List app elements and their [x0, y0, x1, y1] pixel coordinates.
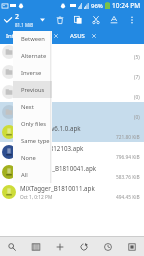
button[interactable]: 2	[15, 12, 37, 28]
staticText: Next	[21, 103, 34, 111]
button[interactable]: MiXTagger_B1810011.apk	[0, 182, 144, 202]
staticText: Inverse	[21, 69, 42, 77]
button[interactable]: Previous	[13, 81, 52, 98]
button[interactable]: View mode	[24, 237, 48, 256]
button[interactable]: Alternate	[13, 47, 52, 64]
staticText: 96%	[91, 2, 103, 10]
button[interactable]: Alarms	[0, 42, 144, 62]
button[interactable]: More options	[123, 11, 141, 28]
button[interactable]: Android	[0, 62, 144, 82]
staticText: Backups	[20, 104, 45, 112]
staticText: Android	[20, 64, 44, 72]
button[interactable]: Search	[0, 237, 24, 256]
staticText: Oct 1, 0:12 PM	[20, 74, 53, 81]
staticText: (7)	[134, 74, 140, 81]
button[interactable]: History	[96, 237, 120, 256]
staticText: MiXplorer_v6.1.0.apk	[20, 124, 81, 132]
button[interactable]: MiXLib_B1812103.apk	[0, 142, 144, 162]
button[interactable]: Refresh	[72, 237, 96, 256]
staticText: Same type	[21, 137, 50, 145]
staticText: 10:24 PM	[112, 1, 141, 10]
button[interactable]: MiXplorer_v6.1.0.apk	[0, 122, 144, 142]
button[interactable]: Next	[13, 98, 52, 115]
staticText: (5)	[134, 54, 140, 61]
button[interactable]: None	[13, 149, 52, 166]
button[interactable]: Asus	[0, 82, 144, 102]
button[interactable]: Delete	[51, 11, 69, 28]
button[interactable]: ASUS	[62, 28, 100, 43]
staticText: Internal	[6, 32, 29, 40]
staticText: (0)	[134, 114, 140, 121]
staticText: All	[21, 171, 28, 179]
staticText: Oct 1, 0:12 PM	[20, 194, 53, 201]
staticText: Oct 1, 0:12 PM	[20, 174, 53, 181]
staticText: Oct 1, 0:12 PM	[20, 94, 53, 101]
staticText: None	[21, 154, 36, 162]
staticText: 494.45 KiB	[116, 194, 140, 201]
staticText: Asus	[20, 84, 34, 92]
button[interactable]: Show selection menu	[37, 11, 47, 28]
staticText: Between	[21, 35, 45, 43]
button[interactable]: Selection mode	[0, 11, 15, 28]
button[interactable]: Cut	[87, 11, 105, 28]
staticText: MiXTagger_B1810011.apk	[20, 184, 95, 192]
button[interactable]: Between	[13, 31, 52, 47]
button[interactable]: MiXArchive_B1810041.apk	[0, 162, 144, 182]
staticText: MiXLib_B1812103.apk	[20, 144, 84, 152]
button[interactable]: Internal	[0, 28, 62, 43]
staticText: Previous	[21, 86, 45, 94]
button[interactable]: Backups	[0, 102, 144, 122]
staticText: (0)	[134, 94, 140, 101]
staticText: MiXArchive_B1810041.apk	[20, 164, 97, 172]
staticText: ASUS	[70, 32, 85, 40]
staticText: Oct 1, 0:12 PM	[20, 154, 53, 161]
staticText: Oct 1, 0:12 PM	[20, 54, 53, 61]
button[interactable]: Select	[120, 237, 144, 256]
button[interactable]: Copy	[69, 11, 87, 28]
button[interactable]: All	[13, 166, 52, 183]
staticText: 796.94 KiB	[116, 154, 140, 161]
staticText: Alternate	[21, 52, 47, 60]
button[interactable]: Only files	[13, 115, 52, 132]
staticText: Oct 1, 0:12 PM	[20, 134, 53, 141]
button[interactable]: Same type	[13, 132, 52, 149]
staticText: 583.76 KiB	[116, 174, 140, 181]
staticText: Only files	[21, 120, 47, 128]
button[interactable]: Inverse	[13, 64, 52, 81]
button[interactable]: Add	[48, 237, 72, 256]
button[interactable]: Rename	[105, 11, 123, 28]
staticText: 2	[15, 12, 20, 22]
staticText: 721.80 KiB	[116, 134, 140, 141]
staticText: 81.1 MiB	[15, 22, 34, 28]
staticText: Oct 1, 0:12 PM	[20, 114, 53, 121]
